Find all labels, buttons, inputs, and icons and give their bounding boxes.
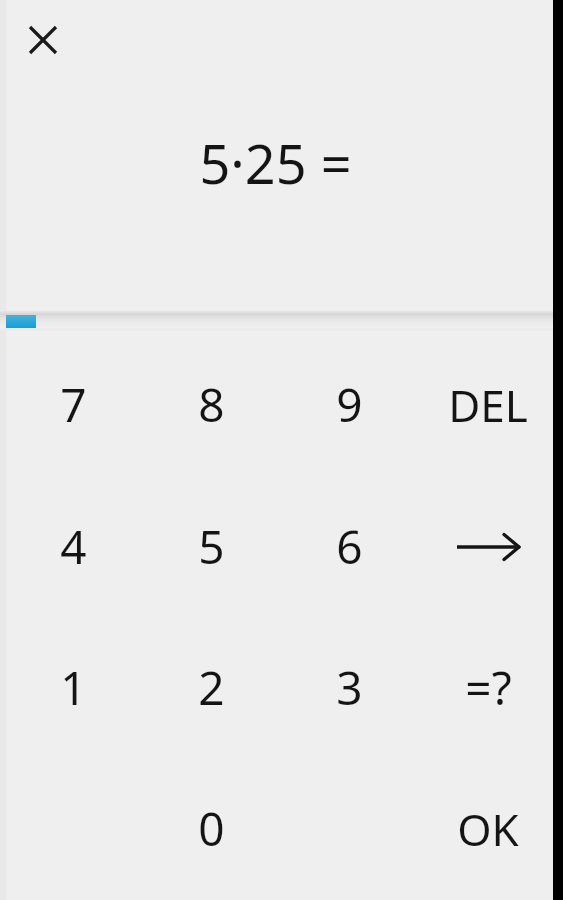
button[interactable]: 2 [142,617,280,758]
button[interactable]: 6 [280,476,418,617]
button[interactable]: 0 [142,758,280,899]
staticText: DEL [448,375,528,435]
button[interactable]: 4 [4,476,142,617]
button[interactable]: Close [18,15,68,65]
staticText: 6 [336,515,363,578]
button[interactable]: 5 [142,476,280,617]
button[interactable]: 8 [142,334,280,475]
staticText: 1 [60,656,87,719]
staticText: 9 [336,373,363,436]
staticText: 3 [336,656,363,719]
button[interactable]: OK [419,758,557,899]
staticText: =? [465,656,512,719]
staticText: 7 [60,373,87,436]
staticText: 4 [60,515,87,578]
button[interactable]: 9 [280,334,418,475]
staticText: 5·25 = [199,126,352,200]
button[interactable]: 1 [4,617,142,758]
button[interactable]: 5·25 = [0,118,550,208]
button[interactable]: DEL [419,334,557,475]
button[interactable]: Next [419,476,557,617]
button[interactable]: 3 [280,617,418,758]
button[interactable]: 7 [4,334,142,475]
staticText: 5 [198,515,225,578]
staticText: 2 [198,656,225,719]
staticText: OK [457,799,519,859]
staticText: 0 [198,797,225,860]
button[interactable]: =? [419,617,557,758]
staticText: 8 [198,373,225,436]
